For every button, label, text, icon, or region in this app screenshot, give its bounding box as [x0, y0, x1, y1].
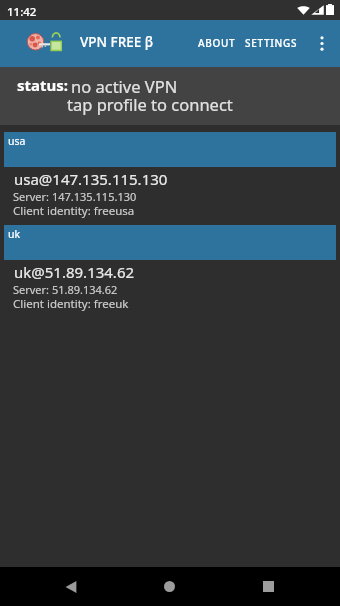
button[interactable]: usa [0, 132, 340, 225]
staticText: Server: 51.89.134.62 [13, 282, 118, 297]
staticText: status: [17, 75, 69, 95]
button[interactable]: Home [145, 567, 193, 606]
staticText: uk@51.89.134.62 [14, 262, 135, 282]
staticText: no active VPN [71, 75, 178, 97]
staticText: Server: 147.135.115.130 [13, 189, 137, 204]
button[interactable]: Back [47, 567, 95, 606]
staticText: Client identity: freeuk [13, 296, 129, 312]
staticText: 11:42 [7, 4, 37, 20]
staticText: SETTINGS [245, 36, 298, 50]
staticText: usa@147.135.115.130 [14, 169, 168, 189]
staticText: ABOUT [198, 36, 236, 50]
staticText: Client identity: freeusa [13, 203, 135, 219]
staticText: tap profile to connect [67, 93, 233, 115]
staticText: usa [8, 134, 26, 148]
staticText: uk [8, 227, 21, 241]
button[interactable]: uk [0, 225, 340, 318]
button[interactable]: ABOUT [192, 19, 242, 66]
button[interactable]: Recent apps [244, 567, 292, 606]
button[interactable]: More options [308, 20, 336, 67]
button[interactable]: SETTINGS [239, 19, 304, 66]
staticText: VPN FREE β [80, 33, 154, 51]
